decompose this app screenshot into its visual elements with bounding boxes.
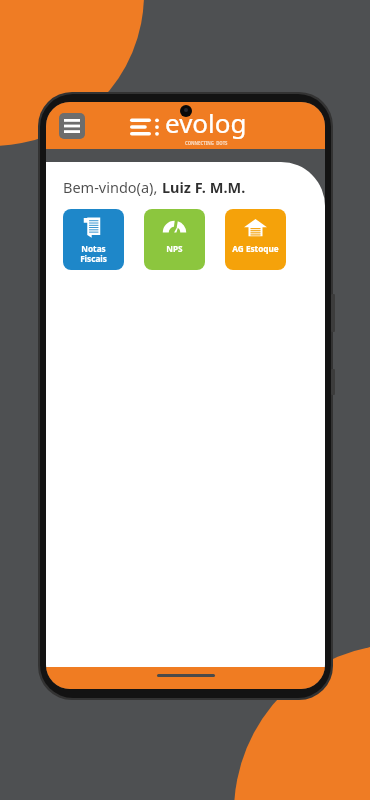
button[interactable]: Notas Fiscais <box>63 209 124 270</box>
staticText: CONNECTING DOTS <box>185 140 228 146</box>
staticText: Notas Fiscais <box>80 243 107 264</box>
staticText: Luiz F. M.M. <box>162 177 246 197</box>
button[interactable]: AG Estoque <box>225 209 286 270</box>
staticText: evolog <box>165 105 247 140</box>
staticText: AG Estoque <box>232 243 279 254</box>
staticText: NPS <box>166 243 183 254</box>
button[interactable]: Open navigation menu <box>59 113 85 139</box>
button[interactable]: NPS <box>144 209 205 270</box>
staticText: Bem-vindo(a), <box>63 177 162 197</box>
